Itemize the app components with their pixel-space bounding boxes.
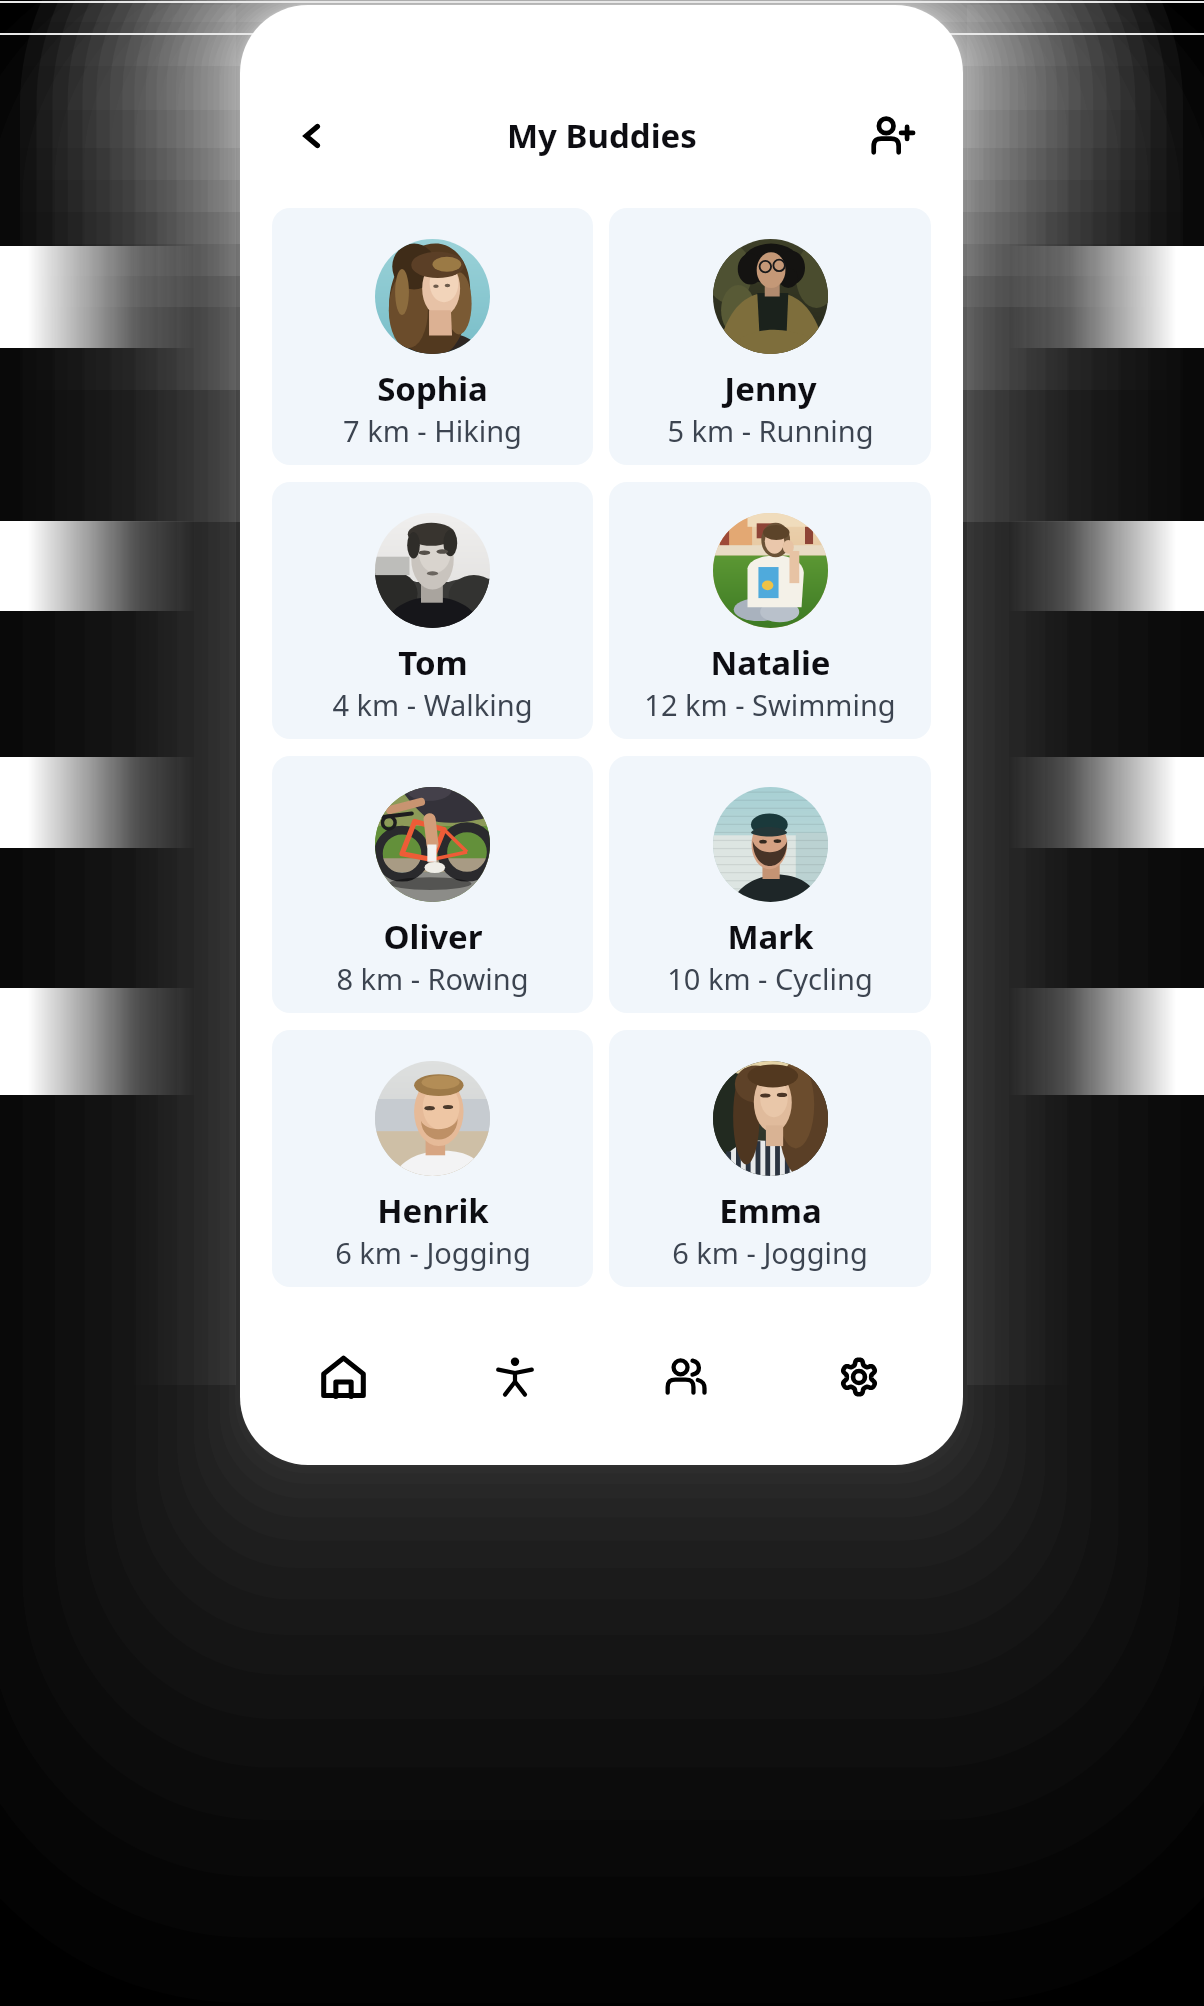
staticText: 4 km - Walking: [332, 685, 533, 724]
button[interactable]: Activity: [429, 1322, 601, 1432]
button[interactable]: Back: [290, 113, 336, 159]
staticText: 5 km - Running: [667, 411, 874, 450]
staticText: 6 km - Jogging: [335, 1233, 531, 1272]
button[interactable]: Oliver: [272, 756, 593, 1013]
button[interactable]: Settings: [773, 1322, 945, 1432]
button[interactable]: Mark: [609, 756, 931, 1013]
staticText: Henrik: [377, 1188, 489, 1233]
button[interactable]: Tom: [272, 482, 593, 739]
button[interactable]: Buddies: [601, 1322, 773, 1432]
button[interactable]: Home: [258, 1322, 429, 1432]
staticText: 10 km - Cycling: [667, 959, 873, 998]
staticText: Oliver: [383, 914, 483, 959]
button[interactable]: Henrik: [272, 1030, 593, 1287]
staticText: Emma: [719, 1188, 822, 1233]
staticText: Jenny: [724, 366, 817, 411]
button[interactable]: Emma: [609, 1030, 931, 1287]
staticText: Mark: [727, 914, 814, 959]
staticText: Sophia: [377, 366, 488, 411]
staticText: My Buddies: [507, 113, 697, 158]
staticText: 6 km - Jogging: [672, 1233, 868, 1272]
staticText: Natalie: [710, 640, 831, 685]
staticText: 8 km - Rowing: [336, 959, 529, 998]
staticText: 7 km - Hiking: [343, 411, 522, 450]
staticText: 12 km - Swimming: [644, 685, 896, 724]
button[interactable]: Add buddy: [863, 108, 919, 164]
staticText: Tom: [398, 640, 468, 685]
button[interactable]: Sophia: [272, 208, 593, 465]
button[interactable]: Jenny: [609, 208, 931, 465]
button[interactable]: Natalie: [609, 482, 931, 739]
